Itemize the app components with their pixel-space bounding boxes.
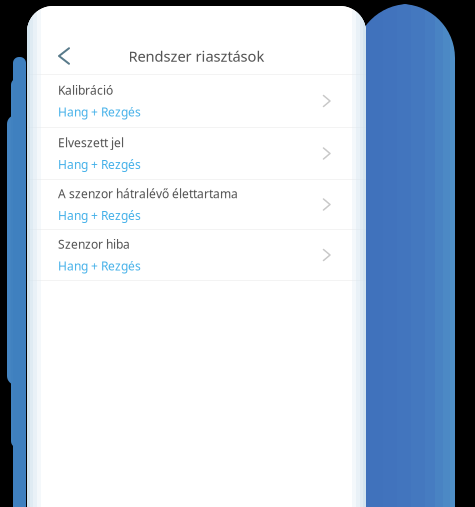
staticText: Hang + Rezgés [58,207,141,223]
staticText: Kalibráció [58,82,113,98]
button[interactable]: Kalibráció [27,75,366,127]
staticText: A szenzor hátralévő élettartama [58,186,238,201]
button[interactable]: A szenzor hátralévő élettartama [27,180,366,229]
staticText: Elveszett jel [58,135,124,150]
button[interactable]: Szenzor hiba [27,230,366,280]
button[interactable]: Back [44,36,84,76]
staticText: Szenzor hiba [58,236,130,252]
button[interactable]: Elveszett jel [27,128,366,179]
staticText: Rendszer riasztások [128,46,264,66]
staticText: Hang + Rezgés [58,104,141,120]
staticText: Hang + Rezgés [58,156,141,172]
staticText: Hang + Rezgés [58,258,141,274]
